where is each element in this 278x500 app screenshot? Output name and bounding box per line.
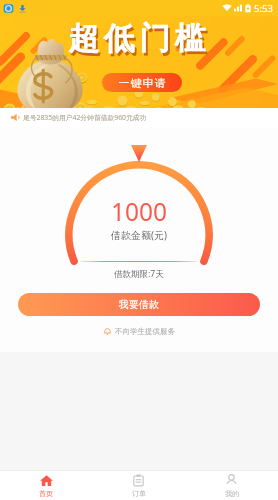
staticText: 尾号2835的用户42分钟前借款960元成功 <box>23 113 147 122</box>
staticText: 借款期限:7天 <box>114 268 164 280</box>
button[interactable]: 一键申请 <box>102 73 182 92</box>
staticText: 首页 <box>39 489 53 498</box>
staticText: 我要借款 <box>119 298 159 311</box>
button[interactable]: Profile <box>185 471 278 500</box>
staticText: 一键申请 <box>118 76 166 90</box>
staticText: 订单 <box>132 489 146 498</box>
staticText: 1000 <box>111 195 168 228</box>
staticText: 我的 <box>225 489 239 498</box>
staticText: 超低门槛 <box>66 19 208 58</box>
button[interactable]: 我要借款 <box>18 293 260 316</box>
button[interactable]: Orders <box>92 471 185 500</box>
staticText: 5:53 <box>254 2 273 15</box>
button[interactable]: 超低门槛 <box>0 16 278 108</box>
staticText: 借款金额(元) <box>111 228 167 242</box>
staticText: 超低门槛 <box>68 22 210 61</box>
staticText: 不向学生提供服务 <box>115 327 175 336</box>
button[interactable]: Home <box>0 471 92 500</box>
